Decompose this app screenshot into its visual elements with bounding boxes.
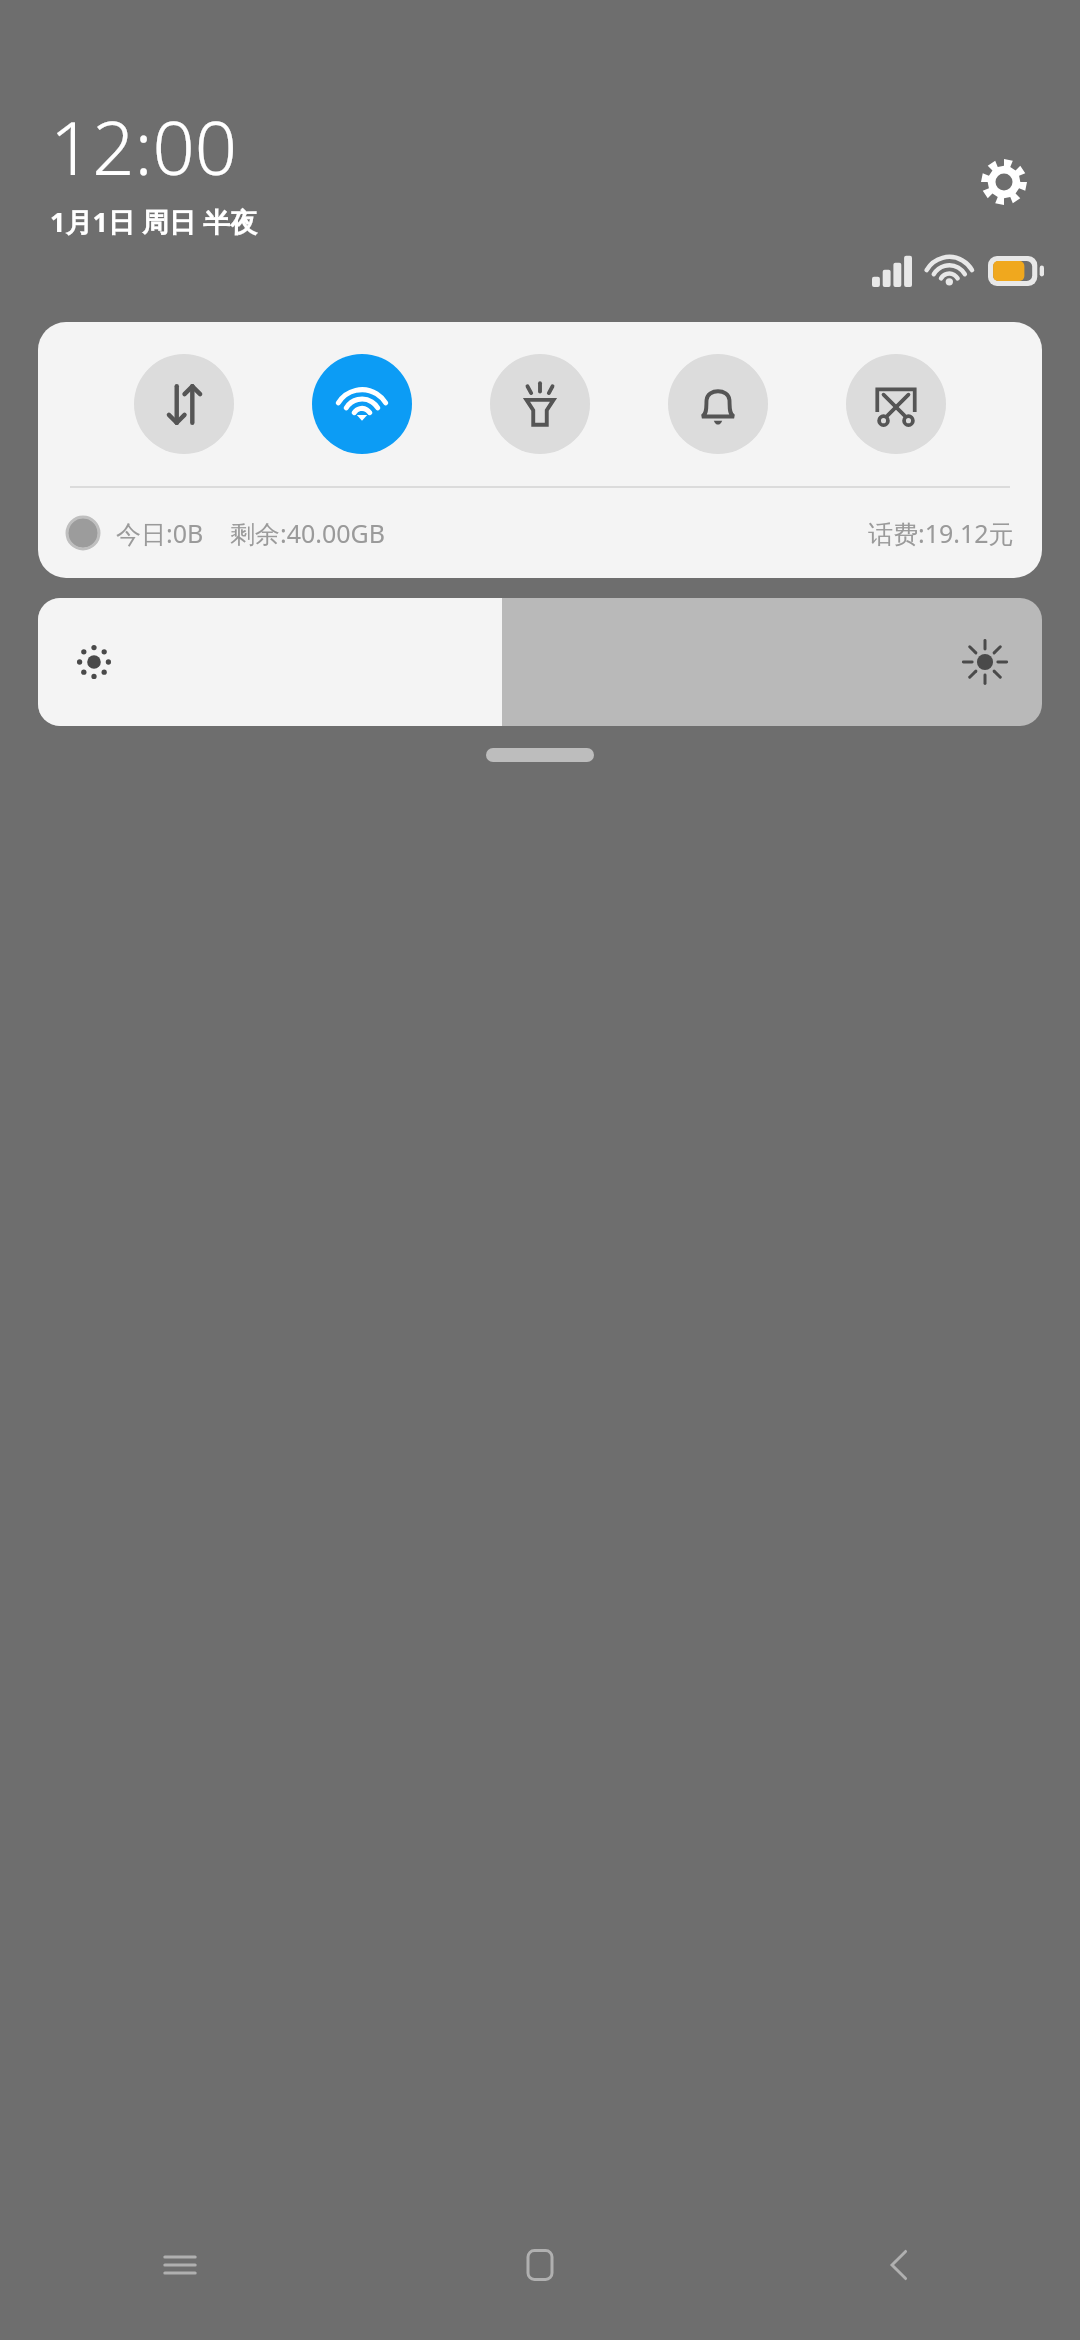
button[interactable]: Wi-Fi (312, 354, 412, 454)
button[interactable]: Home (360, 2190, 720, 2340)
button[interactable]: Screenshot (846, 354, 946, 454)
button[interactable]: Recents (0, 2190, 360, 2340)
staticText: 1月1日 周日 半夜 (50, 203, 257, 240)
button[interactable]: 12:00 (50, 96, 257, 240)
button[interactable]: Flashlight (490, 354, 590, 454)
staticText: 12:00 (50, 96, 238, 197)
staticText: 剩余:40.00GB (230, 516, 386, 550)
button[interactable]: 今日:0B (38, 488, 1042, 578)
button[interactable]: Brightness (38, 598, 1042, 726)
button[interactable]: Expand (486, 748, 594, 762)
staticText: 话费:19.12元 (868, 516, 1014, 550)
button[interactable]: Ringer (668, 354, 768, 454)
staticText: 今日:0B (116, 516, 204, 550)
button[interactable]: Settings (972, 150, 1036, 214)
button[interactable]: Mobile data (134, 354, 234, 454)
